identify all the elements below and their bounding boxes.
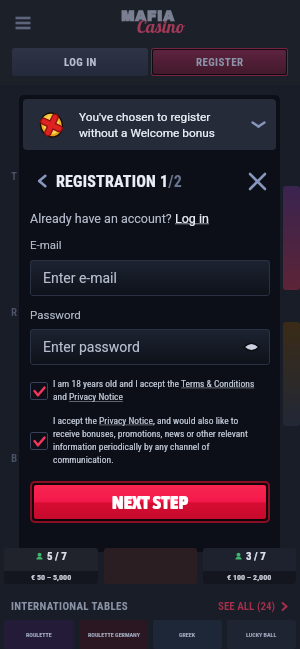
button[interactable]: Enter e-mail — [30, 260, 270, 296]
staticText: NEXT STEP — [112, 491, 189, 513]
button[interactable]: ROULETTE GERMANY — [79, 620, 148, 649]
staticText: T — [11, 170, 17, 183]
staticText: € 50 – 5,000 — [31, 573, 72, 582]
staticText: Enter e-mail — [43, 270, 117, 286]
staticText: Enter password — [43, 339, 140, 355]
staticText: INTERNATIONAL TABLES — [11, 600, 128, 613]
other: Expand — [251, 117, 266, 132]
staticText: I accept the Privacy Notice, and would a… — [53, 415, 256, 466]
staticText: REGISTRATION 1/2 — [56, 172, 182, 191]
staticText: R — [11, 306, 18, 319]
button[interactable]: SEE ALL (24) — [218, 600, 289, 613]
button[interactable]: Log in — [175, 211, 209, 226]
button[interactable]: 3 / 7 — [203, 548, 296, 584]
staticText: Already have an account? — [30, 211, 175, 226]
button[interactable]: LUCKY BALL — [227, 620, 296, 649]
button[interactable]: ROULETTE — [4, 620, 74, 649]
staticText: B — [11, 452, 18, 465]
staticText: 5 / 7 — [47, 550, 67, 563]
staticText: You've chosen to register — [79, 110, 211, 124]
button[interactable]: You've chosen to register — [23, 99, 276, 150]
staticText: ROULETTE GERMANY — [88, 631, 140, 638]
button[interactable]: Back — [30, 169, 54, 193]
button[interactable]: I am 18 years old and I accept the Terms… — [30, 378, 270, 403]
staticText: I am 18 years old and I accept the Terms… — [53, 378, 256, 403]
staticText: ROULETTE — [26, 631, 52, 638]
staticText: without a Welcome bonus — [79, 126, 215, 140]
staticText: LUCKY BALL — [246, 631, 277, 638]
staticText: Password — [30, 308, 81, 321]
staticText: REGISTER — [196, 56, 244, 69]
staticText: € 100 – 2,000 — [227, 573, 272, 582]
staticText: 3 / 7 — [246, 550, 266, 563]
staticText: SEE ALL (24) — [218, 600, 276, 613]
staticText: LOG IN — [64, 56, 97, 69]
staticText: MAFIA — [121, 9, 175, 24]
staticText: GREEK — [179, 631, 196, 638]
button[interactable]: NEXT STEP — [34, 485, 266, 519]
button[interactable]: Enter password — [30, 329, 270, 365]
button[interactable]: I accept the Privacy Notice, and would a… — [30, 415, 270, 466]
button[interactable]: Close — [245, 169, 269, 193]
button[interactable]: REGISTER — [153, 50, 286, 74]
other: Show password — [244, 341, 259, 353]
button[interactable]: 5 / 7 — [4, 548, 98, 584]
staticText: E-mail — [30, 238, 62, 251]
staticText: Casino — [137, 15, 185, 38]
button[interactable]: Menu — [9, 9, 37, 37]
button[interactable]: GREEK — [153, 620, 222, 649]
button[interactable]: LOG IN — [12, 48, 148, 76]
